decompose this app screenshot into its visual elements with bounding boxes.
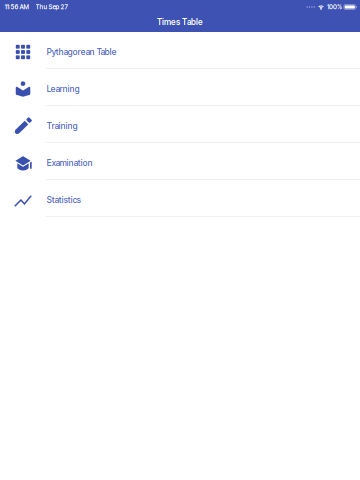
button[interactable]: Statistics (0, 180, 360, 217)
button[interactable]: Pythagorean Table (0, 32, 360, 69)
button[interactable]: Examination (0, 143, 360, 180)
button[interactable]: Training (0, 106, 360, 143)
staticText: Examination (47, 158, 93, 168)
staticText: Times Table (157, 17, 203, 27)
staticText: 100% (327, 3, 342, 11)
staticText: Thu Sep 27 (35, 3, 67, 11)
staticText: Pythagorean Table (47, 47, 117, 57)
staticText: 11:56 AM (4, 3, 28, 11)
staticText: Training (47, 121, 78, 131)
staticText: Statistics (47, 195, 81, 205)
staticText: Learning (47, 84, 80, 94)
button[interactable]: Learning (0, 69, 360, 106)
